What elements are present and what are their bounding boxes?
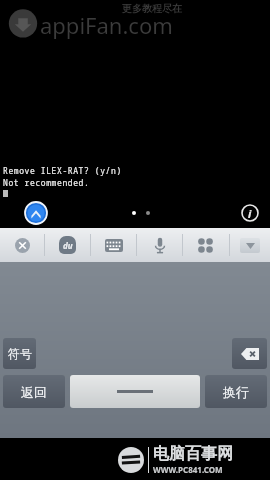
staticText: 电脑百事网 [153, 444, 233, 464]
staticText: 换行 [223, 384, 249, 400]
staticText: Remove ILEX-RAT? (y/n) [3, 165, 122, 176]
button[interactable]: Keyboard [91, 228, 136, 262]
staticText: du [63, 240, 73, 251]
button[interactable]: Scroll up [25, 202, 47, 224]
staticText: WWW.PC841.COM [153, 464, 223, 475]
button[interactable]: Space [70, 375, 200, 408]
button[interactable]: Close [0, 228, 44, 262]
button[interactable]: 返回 [3, 375, 65, 408]
button[interactable]: Baidu input [45, 228, 90, 262]
button[interactable]: 换行 [205, 375, 267, 408]
button[interactable]: Info [241, 204, 259, 222]
button[interactable]: More [183, 228, 228, 262]
staticText: 符号 [8, 346, 32, 361]
button[interactable]: Voice input [137, 228, 182, 262]
staticText: appiFan.com [40, 10, 173, 40]
staticText: 更多教程尽在 [122, 2, 182, 15]
staticText: Not recommended. [3, 177, 90, 188]
button[interactable]: Backspace [232, 338, 267, 369]
button[interactable]: 符号 [3, 338, 36, 369]
button[interactable]: Hide keyboard [230, 228, 270, 262]
staticText: 返回 [21, 384, 47, 400]
staticText: i [248, 206, 252, 221]
